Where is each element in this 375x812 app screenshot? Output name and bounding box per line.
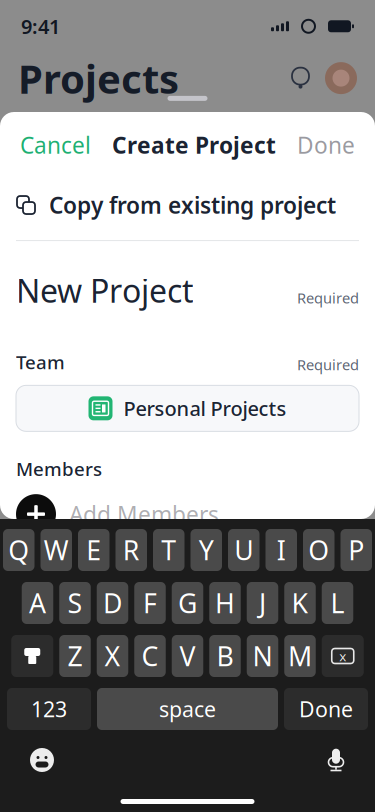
staticText: I [277, 532, 286, 568]
button[interactable]: Delete [322, 635, 364, 677]
button[interactable]: Z [59, 635, 91, 677]
staticText: T [161, 532, 176, 568]
button[interactable]: 123 [7, 688, 91, 730]
staticText: D [103, 585, 122, 621]
staticText: G [178, 585, 197, 621]
staticText: Done [297, 130, 355, 160]
staticText: E [86, 532, 101, 568]
staticText: Personal Projects [123, 395, 286, 422]
staticText: New Project [16, 269, 194, 312]
staticText: A [29, 585, 46, 621]
staticText: Cancel [20, 130, 91, 160]
staticText: M [288, 638, 312, 674]
button[interactable]: O [303, 529, 334, 571]
button[interactable]: Y [190, 529, 222, 571]
button[interactable]: U [228, 529, 259, 571]
staticText: Y [199, 532, 214, 568]
button[interactable]: Emoji [22, 740, 62, 780]
staticText: X [104, 638, 120, 674]
staticText: x [339, 647, 346, 665]
button[interactable]: K [284, 582, 316, 624]
button[interactable]: Copy from existing project [0, 181, 375, 229]
staticText: Projects [18, 52, 179, 105]
staticText: K [291, 585, 308, 621]
staticText: Copy from existing project [49, 190, 336, 220]
staticText: Z [67, 638, 82, 674]
button[interactable]: space [97, 688, 278, 730]
staticText: Required [297, 355, 359, 374]
staticText: C [141, 638, 158, 674]
button[interactable]: M [284, 635, 316, 677]
button[interactable]: V [172, 635, 203, 677]
staticText: P [348, 532, 364, 568]
button[interactable]: W [40, 529, 72, 571]
button[interactable]: E [78, 529, 109, 571]
button[interactable]: Personal Projects [0, 385, 375, 431]
staticText: N [252, 638, 272, 674]
staticText: Done [299, 695, 353, 723]
staticText: J [259, 585, 266, 621]
staticText: R [123, 532, 140, 568]
button[interactable]: Done [284, 688, 368, 730]
button[interactable]: R [115, 529, 147, 571]
button[interactable]: D [97, 582, 128, 624]
button[interactable]: Add Members [0, 492, 375, 536]
staticText: B [216, 638, 233, 674]
button[interactable]: Q [3, 529, 34, 571]
staticText: Create Project [112, 130, 276, 160]
button[interactable]: H [209, 582, 241, 624]
staticText: H [215, 585, 235, 621]
button[interactable]: F [134, 582, 166, 624]
button[interactable]: Cancel [16, 122, 95, 168]
staticText: 9:41 [21, 13, 60, 40]
staticText: F [143, 585, 157, 621]
staticText: Required [297, 288, 359, 308]
button[interactable]: L [322, 582, 353, 624]
staticText: Members [16, 456, 102, 481]
button[interactable]: P [340, 529, 372, 571]
button[interactable]: C [134, 635, 166, 677]
staticText: W [44, 532, 69, 568]
staticText: Q [8, 532, 29, 568]
button[interactable]: X [97, 635, 128, 677]
staticText: space [159, 695, 216, 723]
button[interactable]: J [247, 582, 278, 624]
button[interactable]: I [265, 529, 297, 571]
button[interactable]: G [172, 582, 203, 624]
staticText: S [67, 585, 82, 621]
staticText: Search [58, 123, 121, 150]
staticText: O [308, 532, 329, 568]
button[interactable]: A [22, 582, 53, 624]
staticText: 123 [31, 695, 67, 723]
button[interactable]: Done [293, 122, 359, 168]
button[interactable]: T [153, 529, 184, 571]
button[interactable]: S [59, 582, 91, 624]
staticText: Add Members [69, 499, 219, 529]
staticText: L [330, 585, 344, 621]
staticText: U [234, 532, 253, 568]
staticText: V [179, 638, 195, 674]
button[interactable]: Shift [11, 635, 53, 677]
button[interactable]: N [247, 635, 278, 677]
button[interactable]: Dictation [319, 740, 353, 780]
staticText: Team [16, 350, 65, 374]
button[interactable]: B [209, 635, 241, 677]
